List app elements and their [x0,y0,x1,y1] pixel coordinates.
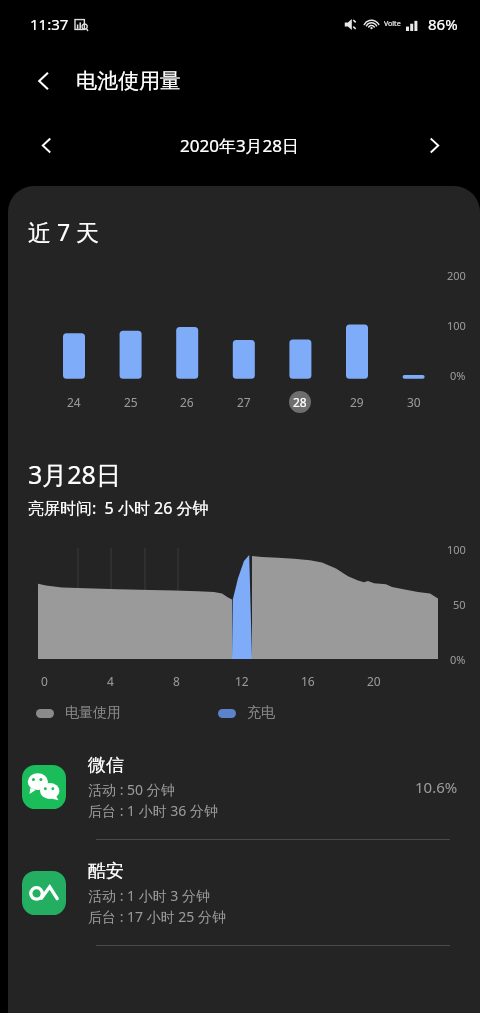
staticText: 30 [407,394,421,410]
staticText: 后台 : 1 小时 36 分钟 [88,801,218,820]
staticText: 25 [124,394,138,410]
staticText: 后台 : 17 小时 25 分钟 [88,907,226,926]
button[interactable]: Previous day [26,125,66,165]
staticText: 10.6% [415,777,458,797]
staticText: 24 [67,394,81,410]
staticText: 4 [107,673,114,689]
staticText: 电池使用量 [76,68,181,94]
staticText: 100 [447,542,466,557]
button[interactable]: Back [24,61,64,101]
staticText: 100 [447,318,466,333]
staticText: 86% [428,14,458,34]
staticText: 3月28日 [28,457,121,491]
staticText: 活动 : 50 分钟 [88,780,175,799]
staticText: Volte [384,19,401,29]
staticText: 酷安 [88,860,124,883]
staticText: 29 [350,394,364,410]
staticText: 0% [450,368,466,383]
staticText: 20 [367,673,381,689]
staticText: 活动 : 1 小时 3 分钟 [88,886,210,905]
staticText: 微信 [88,754,124,777]
staticText: 0% [450,652,466,667]
button[interactable]: Next day [414,125,454,165]
staticText: 2020年3月28日 [180,134,300,157]
staticText: 电量使用 [65,704,121,722]
staticText: 亮屏时间: 5 小时 26 分钟 [28,497,209,519]
staticText: 28 [293,394,307,410]
staticText: 11:37 [30,14,69,34]
staticText: 近 7 天 [28,216,100,247]
staticText: 充电 [247,704,275,722]
button[interactable]: 微信 [8,734,480,840]
staticText: 12 [235,673,249,689]
staticText: 16 [301,673,315,689]
staticText: 8 [173,673,180,689]
staticText: 50 [453,597,466,612]
staticText: 26 [180,394,194,410]
staticText: 27 [237,394,251,410]
staticText: 0 [41,673,48,689]
button[interactable]: 酷安 [8,840,480,946]
staticText: 200 [447,268,466,283]
